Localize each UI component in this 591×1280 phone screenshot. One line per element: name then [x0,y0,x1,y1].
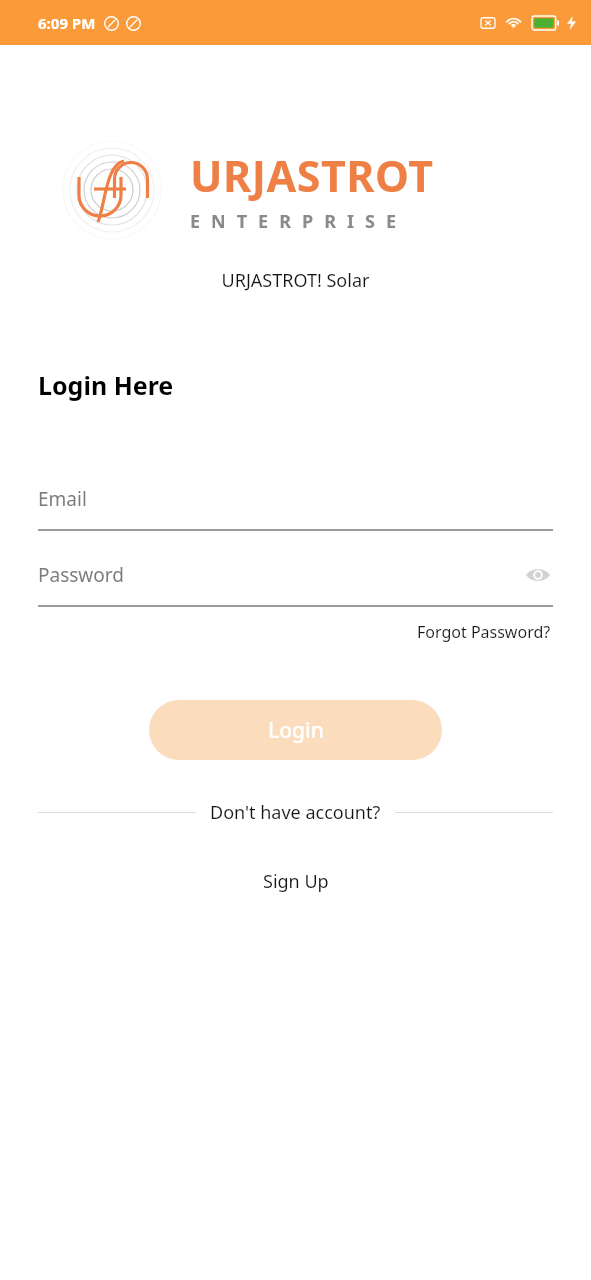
staticText: Login Here [38,368,174,402]
button[interactable]: Login [149,700,442,760]
button[interactable]: Sign Up [253,865,339,898]
staticText: Forgot Password? [417,621,551,643]
staticText: ENTERPRISE [190,209,407,234]
staticText: URJASTROT [190,146,434,205]
button[interactable]: Email [38,477,553,531]
staticText: Sign Up [263,869,329,894]
staticText: URJASTROT! Solar [0,268,591,293]
button[interactable]: Forgot Password? [415,617,553,647]
staticText: 6:09 PM [38,13,96,33]
staticText: Login [268,716,324,745]
staticText: Email [38,486,553,512]
button[interactable]: Password [38,553,553,607]
staticText: Password [38,562,523,588]
staticText: Don't have account? [210,800,381,825]
button[interactable]: Show password [523,560,553,590]
